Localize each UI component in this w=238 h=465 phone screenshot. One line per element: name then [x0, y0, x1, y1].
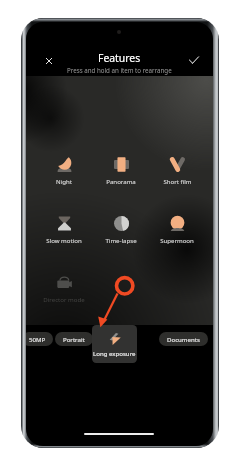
button[interactable]: Long exposure: [92, 325, 137, 363]
staticText: Time-lapse: [105, 236, 137, 244]
button[interactable]: Close: [41, 53, 57, 69]
button[interactable]: Portrait: [55, 332, 93, 346]
staticText: 50MP: [29, 335, 46, 343]
staticText: Press and hold an item to rearrange: [67, 66, 172, 74]
staticText: Panorama: [106, 177, 136, 185]
staticText: Short film: [163, 177, 192, 185]
staticText: Supermoon: [160, 236, 194, 244]
button[interactable]: Supermoon: [149, 216, 205, 244]
button[interactable]: Short film: [149, 157, 205, 185]
staticText: Documents: [167, 335, 200, 343]
staticText: Features: [98, 51, 141, 65]
staticText: Night: [56, 177, 72, 185]
staticText: Portrait: [63, 335, 85, 343]
staticText: Slow motion: [46, 236, 82, 244]
button[interactable]: Slow motion: [36, 216, 92, 244]
button[interactable]: Time-lapse: [93, 216, 149, 244]
button[interactable]: Night: [36, 157, 92, 185]
button[interactable]: Done: [186, 52, 202, 68]
button[interactable]: Panorama: [93, 157, 149, 185]
staticText: Long exposure: [93, 349, 136, 357]
button[interactable]: Documents: [159, 332, 208, 346]
button[interactable]: Director mode: [36, 275, 92, 303]
button[interactable]: 50MP: [26, 332, 53, 346]
staticText: Director mode: [43, 295, 85, 303]
